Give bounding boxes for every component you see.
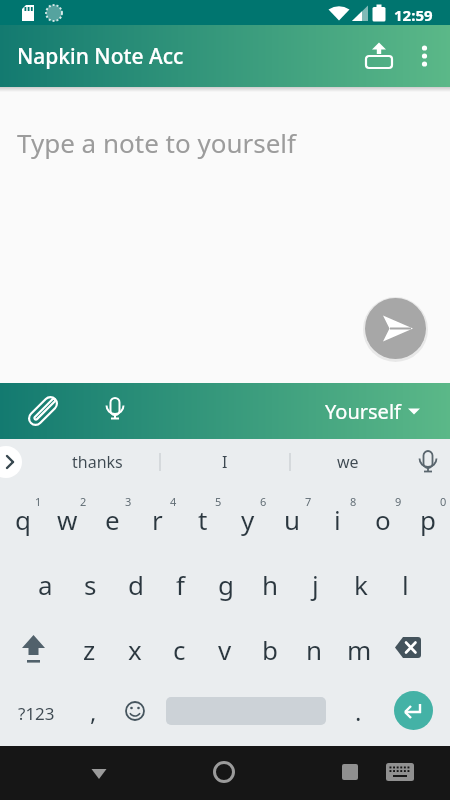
button[interactable]: i xyxy=(315,485,360,550)
staticText: x xyxy=(128,632,142,667)
staticText: k xyxy=(354,567,368,602)
button[interactable]: w xyxy=(45,485,90,550)
button[interactable]: I xyxy=(160,439,290,485)
staticText: j xyxy=(312,567,319,602)
button[interactable]: j xyxy=(293,550,338,615)
button[interactable] xyxy=(380,752,420,792)
staticText: c xyxy=(173,632,186,667)
button[interactable]: s xyxy=(68,550,113,615)
button[interactable]: we xyxy=(290,439,405,485)
staticText: 7 xyxy=(305,494,312,509)
staticText: p xyxy=(420,502,436,537)
staticText: I xyxy=(222,451,228,473)
staticText: f xyxy=(176,567,185,602)
button[interactable]: y xyxy=(225,485,270,550)
staticText: l xyxy=(402,567,409,602)
button[interactable]: f xyxy=(158,550,203,615)
button[interactable] xyxy=(394,691,433,730)
button[interactable] xyxy=(0,446,22,478)
button[interactable] xyxy=(365,298,426,359)
button[interactable]: v xyxy=(202,615,247,680)
staticText: u xyxy=(284,502,301,537)
button[interactable]: r xyxy=(135,485,180,550)
staticText: h xyxy=(262,567,279,602)
button[interactable] xyxy=(97,391,133,427)
staticText: we xyxy=(337,451,359,473)
button[interactable]: h xyxy=(248,550,293,615)
staticText: d xyxy=(128,567,144,602)
staticText: q xyxy=(15,502,31,537)
staticText: 1 xyxy=(35,494,42,509)
staticText: thanks xyxy=(72,451,123,473)
button[interactable] xyxy=(0,615,67,680)
staticText: m xyxy=(347,632,372,667)
button[interactable]: l xyxy=(383,550,428,615)
button[interactable]: c xyxy=(157,615,202,680)
button[interactable]: Yourself xyxy=(325,383,420,439)
button[interactable] xyxy=(79,753,119,793)
button[interactable]: o xyxy=(360,485,405,550)
button[interactable]: thanks xyxy=(25,439,170,485)
button[interactable] xyxy=(204,752,244,792)
button[interactable]: z xyxy=(67,615,112,680)
button[interactable]: u xyxy=(270,485,315,550)
staticText: . xyxy=(355,695,362,728)
staticText: 5 xyxy=(215,494,222,509)
staticText: s xyxy=(84,567,97,602)
button[interactable]: , xyxy=(72,680,114,746)
button[interactable]: b xyxy=(247,615,292,680)
staticText: b xyxy=(262,632,278,667)
button[interactable]: a xyxy=(22,550,68,615)
staticText: 6 xyxy=(260,494,267,509)
staticText: , xyxy=(90,695,97,728)
staticText: 2 xyxy=(80,494,87,509)
button[interactable]: k xyxy=(338,550,383,615)
staticText: a xyxy=(38,567,53,602)
staticText: 0 xyxy=(440,494,447,509)
staticText: 3 xyxy=(125,494,132,509)
staticText: w xyxy=(57,502,78,537)
staticText: i xyxy=(334,502,341,537)
staticText: Napkin Note Acc xyxy=(17,42,184,71)
staticText: Type a note to yourself xyxy=(17,125,297,160)
button[interactable]: d xyxy=(113,550,158,615)
staticText: z xyxy=(83,632,96,667)
button[interactable] xyxy=(330,752,370,792)
staticText: 9 xyxy=(395,494,402,509)
button[interactable]: t xyxy=(180,485,225,550)
button[interactable]: e xyxy=(90,485,135,550)
button[interactable]: q xyxy=(0,485,45,550)
staticText: t xyxy=(198,502,208,537)
button[interactable] xyxy=(25,393,61,429)
staticText: r xyxy=(152,502,163,537)
staticText: 12:59 xyxy=(394,5,433,25)
staticText: v xyxy=(218,632,232,667)
button[interactable]: p xyxy=(405,485,450,550)
button[interactable]: g xyxy=(203,550,248,615)
staticText: g xyxy=(218,567,234,602)
button[interactable]: n xyxy=(292,615,337,680)
button[interactable]: m xyxy=(337,615,382,680)
staticText: o xyxy=(375,502,391,537)
staticText: n xyxy=(306,632,323,667)
staticText: 4 xyxy=(170,494,177,509)
staticText: e xyxy=(105,502,120,537)
button[interactable] xyxy=(382,615,450,680)
staticText: Yourself xyxy=(325,398,401,425)
staticText: 8 xyxy=(350,494,357,509)
staticText: y xyxy=(241,502,255,537)
button[interactable]: . xyxy=(337,680,379,746)
button[interactable]: ?123 xyxy=(0,680,72,746)
button[interactable] xyxy=(114,680,156,746)
button[interactable] xyxy=(361,38,397,74)
staticText: ?123 xyxy=(18,702,55,725)
button[interactable] xyxy=(410,38,440,74)
button[interactable] xyxy=(410,443,446,479)
button[interactable]: x xyxy=(112,615,157,680)
